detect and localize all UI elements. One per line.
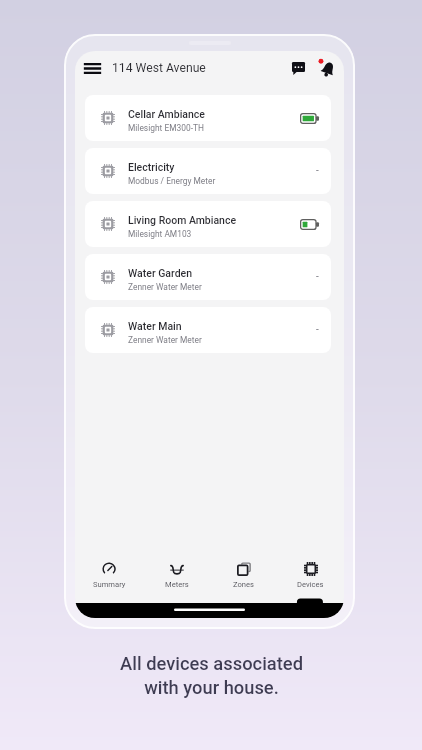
staticText: Milesight EM300-TH <box>128 123 204 133</box>
staticText: All devices associated <box>120 653 303 674</box>
staticText: Zones <box>233 580 254 589</box>
staticText: Modbus / Energy Meter <box>128 176 216 186</box>
staticText: Cellar Ambiance <box>128 108 205 120</box>
button[interactable]: Water Garden <box>85 254 331 300</box>
staticText: 114 West Avenue <box>112 61 206 75</box>
button[interactable]: Devices <box>277 557 344 603</box>
button[interactable]: Cellar Ambiance <box>85 95 331 141</box>
staticText: Living Room Ambiance <box>128 214 237 226</box>
staticText: Zenner Water Meter <box>128 335 202 345</box>
button[interactable]: Menu <box>80 56 104 80</box>
button[interactable]: Water Main <box>85 307 331 353</box>
button[interactable]: Notifications <box>317 57 339 79</box>
staticText: Water Garden <box>128 267 193 279</box>
button[interactable]: Zones <box>210 557 277 603</box>
button[interactable]: Electricity <box>85 148 331 194</box>
button[interactable]: Summary <box>75 557 143 603</box>
staticText: Zenner Water Meter <box>128 282 202 292</box>
staticText: Summary <box>93 580 126 589</box>
staticText: Meters <box>165 580 189 589</box>
staticText: Water Main <box>128 320 182 332</box>
staticText: - <box>316 165 319 177</box>
staticText: - <box>316 324 319 336</box>
button[interactable]: Messages <box>287 57 309 79</box>
staticText: Electricity <box>128 161 175 173</box>
button[interactable]: Meters <box>143 557 210 603</box>
staticText: - <box>316 271 319 283</box>
button[interactable]: Living Room Ambiance <box>85 201 331 247</box>
staticText: with your house. <box>144 677 279 698</box>
staticText: Devices <box>297 580 324 589</box>
staticText: Milesight AM103 <box>128 229 192 239</box>
